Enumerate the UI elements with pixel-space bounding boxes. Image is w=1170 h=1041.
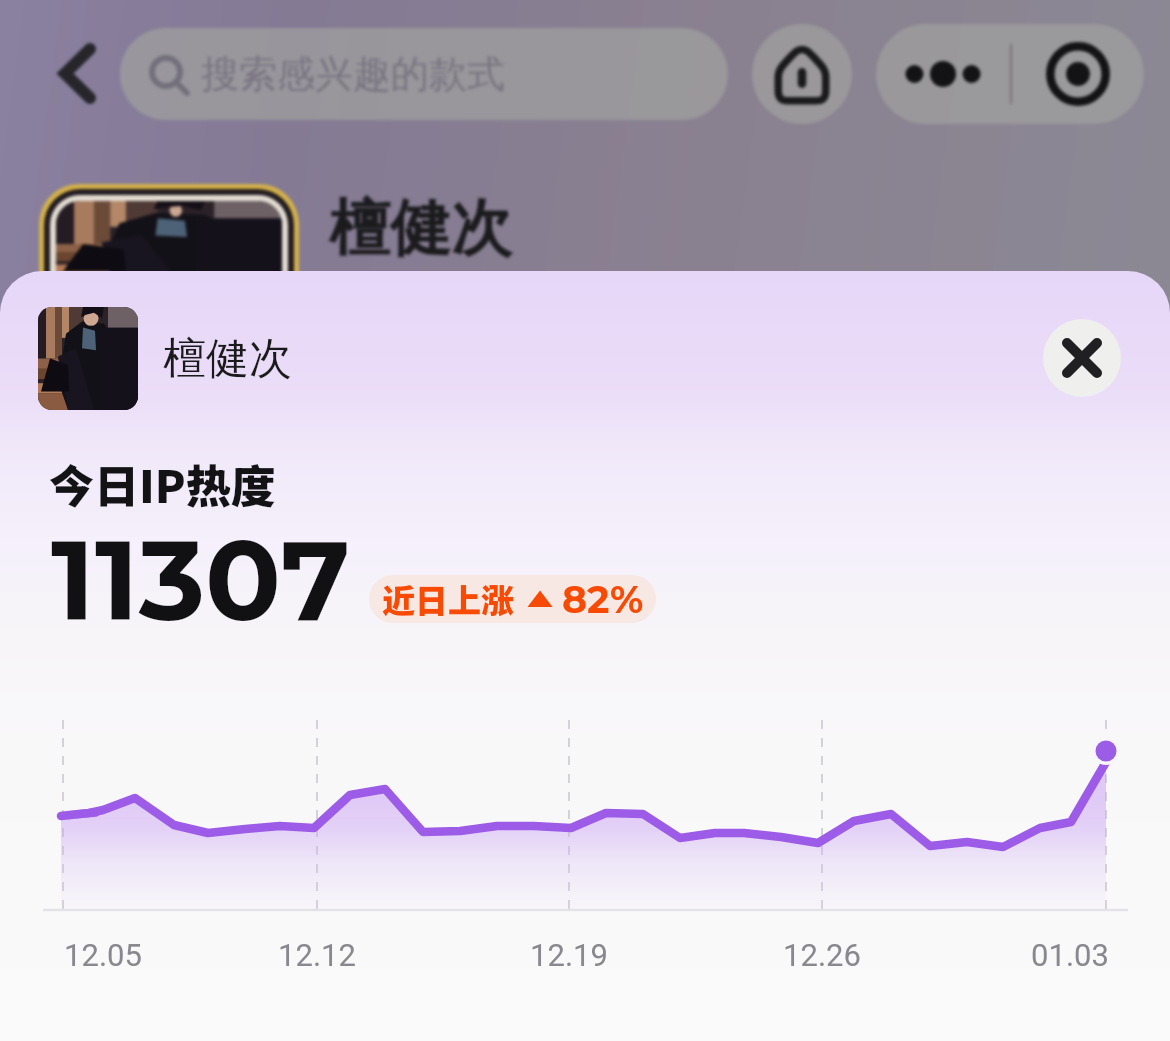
staticText: 12.19: [530, 937, 608, 973]
staticText: 11307: [51, 512, 351, 649]
staticText: 近日上涨: [382, 575, 514, 623]
staticText: 搜索感兴趣的款式: [201, 50, 505, 98]
button[interactable]: Record: [1012, 24, 1144, 124]
staticText: 檀健次: [163, 332, 292, 386]
button[interactable]: Home: [752, 24, 852, 124]
staticText: 12.05: [64, 937, 142, 973]
staticText: 01.03: [1031, 937, 1109, 973]
button[interactable]: More options: [876, 24, 1010, 124]
button[interactable]: 搜索感兴趣的款式: [120, 28, 728, 120]
staticText: 今日IP热度: [49, 451, 276, 516]
staticText: 12.26: [783, 937, 861, 973]
staticText: 12.12: [278, 937, 356, 973]
staticText: 檀健次: [329, 190, 512, 267]
button[interactable]: Close: [1043, 319, 1121, 397]
staticText: 82%: [562, 576, 644, 622]
button[interactable]: 檀健次: [30, 301, 308, 416]
button[interactable]: Back: [36, 28, 118, 118]
